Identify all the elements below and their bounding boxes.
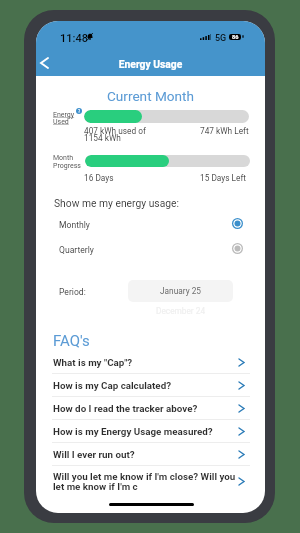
button[interactable]: How do I read the tracker above? xyxy=(36,397,265,420)
staticText: 407 kWh used of xyxy=(84,126,146,136)
staticText: How do I read the tracker above? xyxy=(53,403,248,414)
button[interactable]: Back xyxy=(36,50,52,76)
staticText: Will you let me know if I'm close? Will … xyxy=(53,471,248,493)
staticText: 86 xyxy=(232,34,239,40)
button[interactable]: Quarterly xyxy=(36,237,265,259)
button[interactable]: Will I ever run out? xyxy=(36,443,265,466)
staticText: Will I ever run out? xyxy=(53,449,248,460)
staticText: 5G xyxy=(215,33,227,44)
staticText: Used xyxy=(53,118,69,126)
staticText: Monthly xyxy=(59,220,90,230)
staticText: What is my "Cap"? xyxy=(53,357,248,368)
button[interactable]: How is my Cap calculated? xyxy=(36,374,265,397)
staticText: How is my Cap calculated? xyxy=(53,380,248,391)
staticText: January 25 xyxy=(160,286,201,296)
staticText: 11:48 xyxy=(60,32,88,45)
button[interactable]: What is my "Cap"? xyxy=(36,351,265,374)
button[interactable]: Help xyxy=(76,108,82,114)
button[interactable]: Monthly xyxy=(36,212,265,234)
button[interactable]: Will you let me know if I'm close? Will … xyxy=(36,466,265,497)
staticText: Show me my energy usage: xyxy=(54,197,179,209)
staticText: 16 Days xyxy=(84,173,114,183)
staticText: 747 kWh Left xyxy=(200,126,249,136)
button[interactable]: How is my Energy Usage measured? xyxy=(36,420,265,443)
staticText: 15 Days Left xyxy=(200,173,247,183)
staticText: FAQ's xyxy=(53,332,90,350)
staticText: Current Month xyxy=(36,88,265,104)
staticText: How is my Energy Usage measured? xyxy=(53,426,248,437)
staticText: 1154 kWh xyxy=(84,133,121,143)
staticText: December 24 xyxy=(128,306,233,316)
staticText: Month xyxy=(53,154,74,162)
staticText: Energy xyxy=(53,111,75,119)
staticText: Period: xyxy=(59,287,86,297)
staticText: Energy Usage xyxy=(36,58,265,70)
staticText: Quarterly xyxy=(59,245,94,255)
staticText: Progress xyxy=(53,162,81,170)
staticText: ? xyxy=(78,109,81,114)
button[interactable]: January 25 xyxy=(128,280,233,302)
